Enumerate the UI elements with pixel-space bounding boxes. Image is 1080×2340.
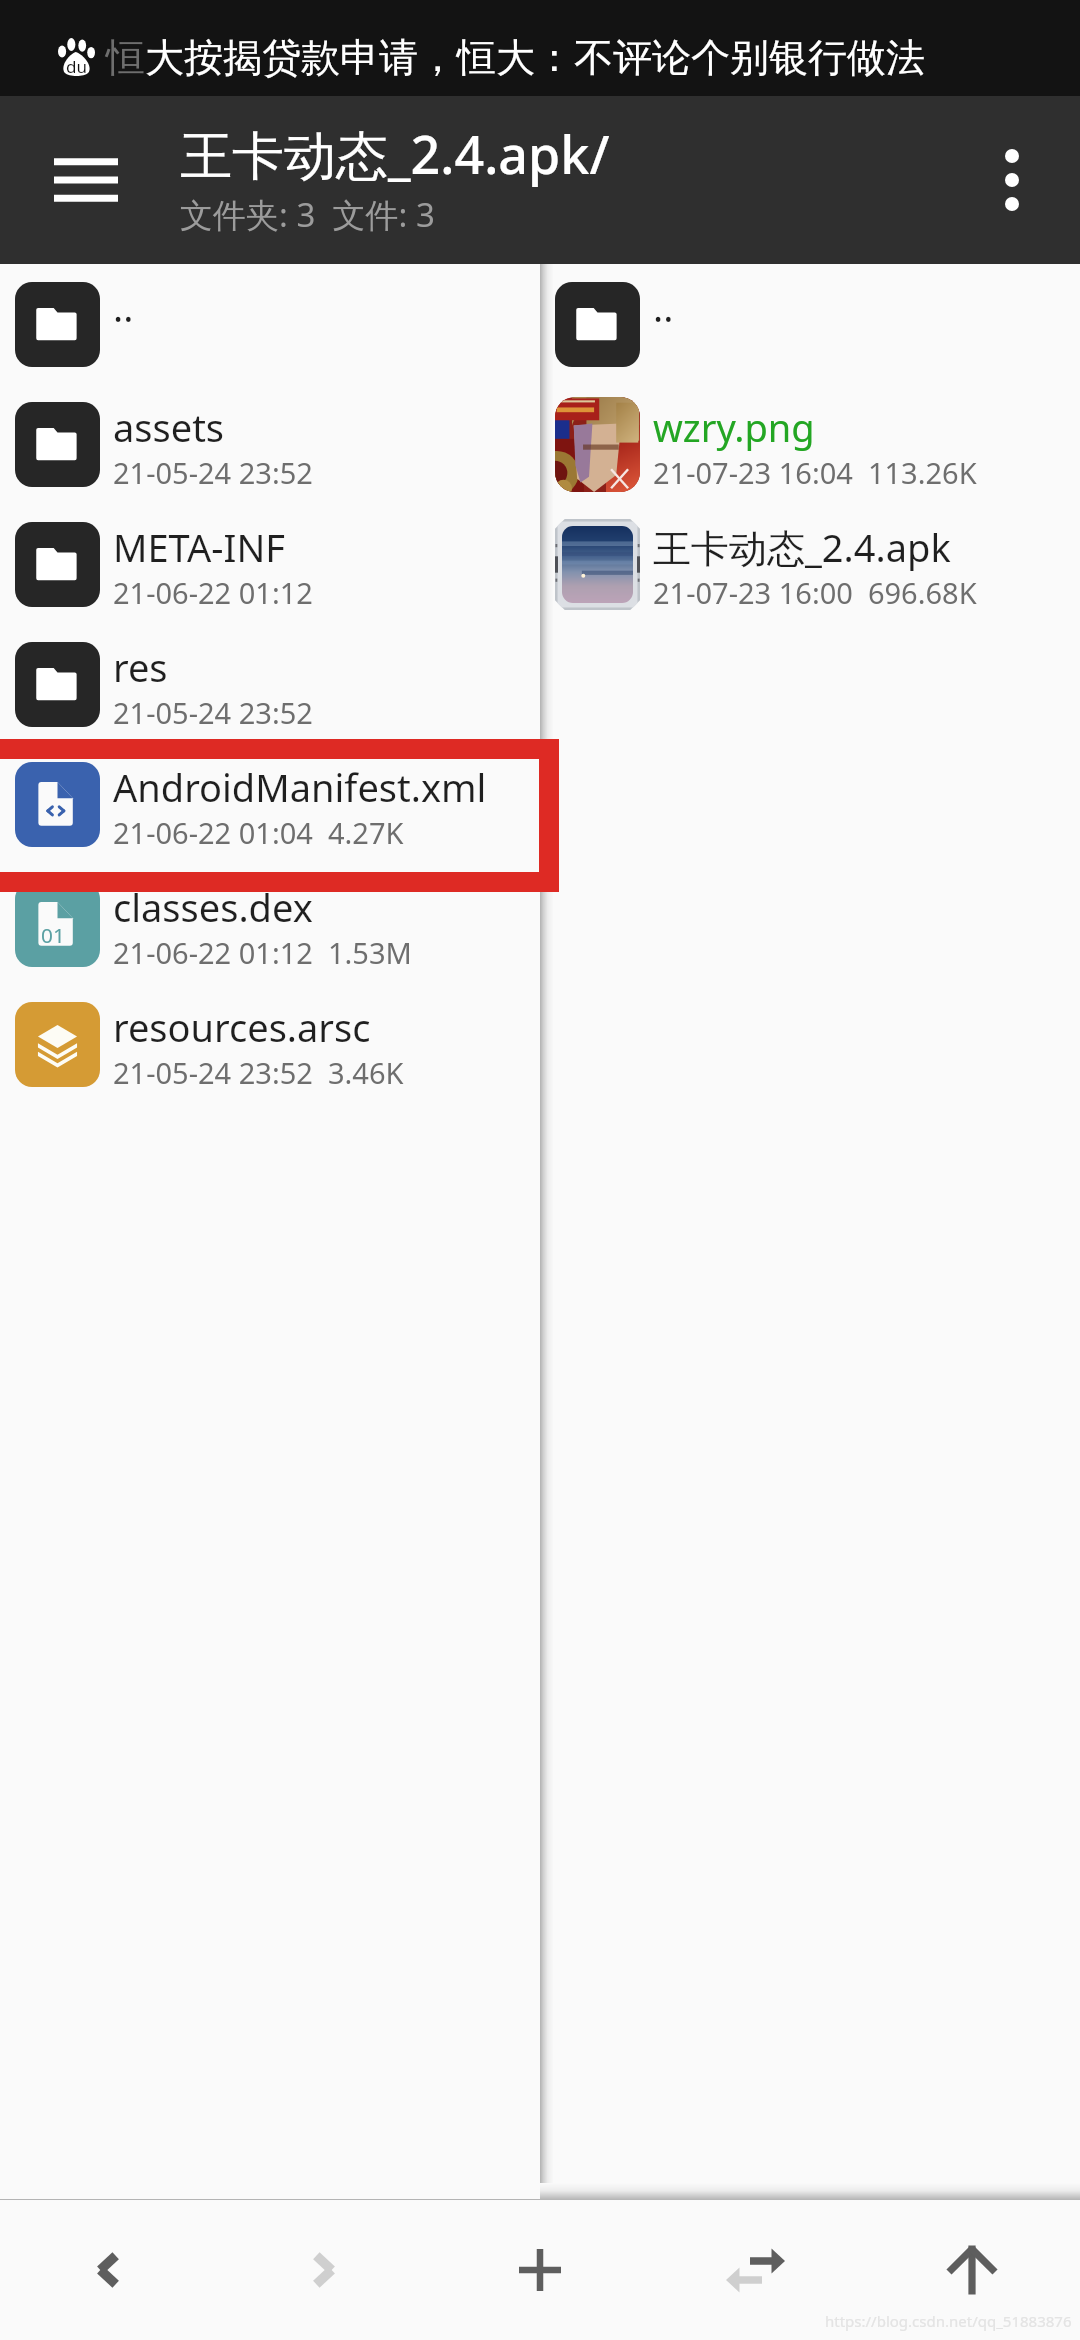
button[interactable]: Up (864, 2200, 1080, 2340)
button[interactable]: assets (0, 384, 540, 504)
staticText: 21-06-22 01:12 (113, 573, 313, 612)
staticText: du (66, 55, 87, 78)
staticText: assets (113, 401, 225, 453)
staticText: 王卡动态_2.4.apk/ (180, 118, 610, 189)
staticText: 21-06-22 01:12 1.53M (113, 933, 412, 972)
staticText: 21-07-23 16:04 113.26K (653, 453, 977, 492)
button[interactable]: res (0, 624, 540, 744)
staticText: 恒 (106, 33, 145, 82)
button[interactable]: More options (964, 132, 1060, 228)
staticText: 大按揭贷款申请，恒大：不评论个别银行做法 (145, 33, 925, 82)
button[interactable]: Forward (216, 2200, 432, 2340)
staticText: META-INF (113, 521, 286, 573)
staticText: classes.dex (113, 881, 313, 933)
staticText: 21-05-24 23:52 3.46K (113, 1053, 404, 1092)
button[interactable]: Back (0, 2200, 216, 2340)
staticText: AndroidManifest.xml (113, 761, 487, 813)
staticText: wzry.png (653, 401, 815, 453)
button[interactable]: AndroidManifest.xml (0, 744, 540, 864)
staticText: https://blog.csdn.net/qq_51883876 (825, 2311, 1072, 2331)
button[interactable]: Swap panes (648, 2200, 864, 2340)
button[interactable]: META-INF (0, 504, 540, 624)
button[interactable]: New (432, 2200, 648, 2340)
staticText: 21-07-23 16:00 696.68K (653, 573, 977, 612)
staticText: res (113, 641, 168, 693)
staticText: 21-05-24 23:52 (113, 693, 313, 732)
button[interactable]: .. (540, 264, 1080, 384)
button[interactable]: wzry.png (540, 384, 1080, 504)
button[interactable]: resources.arsc (0, 984, 540, 1104)
staticText: resources.arsc (113, 1001, 371, 1053)
staticText: .. (113, 281, 134, 333)
staticText: 21-05-24 23:52 (113, 453, 313, 492)
button[interactable]: 王卡动态_2.4.apk (540, 504, 1080, 624)
staticText: 01 (41, 921, 65, 949)
staticText: 文件夹: 3 文件: 3 (180, 192, 435, 237)
staticText: 王卡动态_2.4.apk (653, 521, 951, 573)
staticText: 21-06-22 01:04 4.27K (113, 813, 404, 852)
button[interactable]: .. (0, 264, 540, 384)
button[interactable]: 01 (0, 864, 540, 984)
staticText: .. (653, 281, 674, 333)
button[interactable]: Menu (38, 132, 134, 228)
